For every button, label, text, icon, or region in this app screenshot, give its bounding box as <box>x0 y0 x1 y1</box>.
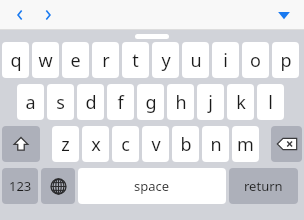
staticText: j <box>208 90 213 115</box>
staticText: u <box>190 48 202 73</box>
staticText: g <box>145 90 157 115</box>
staticText: s <box>56 90 65 115</box>
button[interactable]: z <box>52 126 79 162</box>
button[interactable]: t <box>122 42 149 78</box>
button[interactable]: a <box>17 84 44 120</box>
staticText: r <box>102 48 110 73</box>
staticText: m <box>237 132 254 157</box>
button[interactable]: h <box>167 84 194 120</box>
button[interactable]: w <box>32 42 59 78</box>
button[interactable]: q <box>2 42 29 78</box>
staticText: a <box>25 90 36 115</box>
button[interactable]: 123 <box>2 168 38 204</box>
staticText: t <box>132 48 139 73</box>
button[interactable]: j <box>197 84 224 120</box>
button[interactable]: Change language <box>41 168 75 204</box>
staticText: l <box>268 90 273 115</box>
staticText: e <box>70 48 81 73</box>
button[interactable]: p <box>272 42 299 78</box>
button[interactable]: c <box>112 126 139 162</box>
button[interactable]: n <box>202 126 229 162</box>
button[interactable]: Shift <box>2 126 40 162</box>
button[interactable]: y <box>152 42 179 78</box>
button[interactable]: x <box>82 126 109 162</box>
staticText: d <box>85 90 97 115</box>
button[interactable]: m <box>232 126 259 162</box>
staticText: f <box>117 90 124 115</box>
staticText: v <box>151 132 161 157</box>
staticText: n <box>210 132 222 157</box>
button[interactable]: v <box>142 126 169 162</box>
button[interactable]: s <box>47 84 74 120</box>
staticText: c <box>121 132 130 157</box>
staticText: k <box>236 90 246 115</box>
staticText: 123 <box>9 177 32 195</box>
staticText: h <box>175 90 187 115</box>
button[interactable]: l <box>257 84 284 120</box>
staticText: o <box>250 48 261 73</box>
button[interactable]: e <box>62 42 89 78</box>
button[interactable]: u <box>182 42 209 78</box>
staticText: w <box>38 48 53 73</box>
button[interactable]: r <box>92 42 119 78</box>
button[interactable]: o <box>242 42 269 78</box>
button[interactable]: k <box>227 84 254 120</box>
button[interactable]: f <box>107 84 134 120</box>
staticText: x <box>91 132 101 157</box>
button[interactable]: i <box>212 42 239 78</box>
button[interactable]: Hide keyboard <box>272 3 296 27</box>
button[interactable]: b <box>172 126 199 162</box>
button[interactable]: Previous field <box>8 3 32 27</box>
staticText: b <box>180 132 192 157</box>
staticText: i <box>223 48 228 73</box>
staticText: p <box>280 48 292 73</box>
button[interactable]: return <box>229 168 298 204</box>
staticText: q <box>10 48 22 73</box>
staticText: y <box>161 48 171 73</box>
staticText: space <box>134 177 170 195</box>
button[interactable]: g <box>137 84 164 120</box>
button[interactable]: space <box>78 168 226 204</box>
staticText: return <box>244 177 283 195</box>
staticText: z <box>61 132 70 157</box>
button[interactable]: d <box>77 84 104 120</box>
button[interactable]: Backspace <box>271 126 302 162</box>
button[interactable]: Next field <box>36 3 60 27</box>
